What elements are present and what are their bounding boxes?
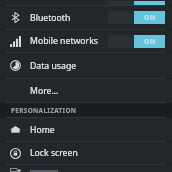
staticText: More... [30,85,59,97]
staticText: ON [144,37,156,46]
button[interactable]: Bluetooth [0,6,172,29]
button[interactable]: Home [0,118,172,141]
button[interactable]: More... [0,79,172,102]
button[interactable]: Mobile networks [0,30,172,52]
button[interactable]: Lock screen [0,142,172,164]
button[interactable]: Display [0,165,172,172]
button[interactable]: Wi-Fi [0,0,172,5]
staticText: ON [144,13,156,22]
staticText: Home [30,124,55,136]
staticText: Bluetooth [30,12,71,24]
staticText: Data usage [30,60,77,72]
staticText: PERSONALIZATION [11,106,77,115]
button[interactable]: On [108,35,165,48]
button[interactable]: Data usage [0,53,172,78]
button[interactable]: On [108,11,165,24]
staticText: Mobile networks [30,35,98,47]
staticText: Lock screen [30,147,78,159]
